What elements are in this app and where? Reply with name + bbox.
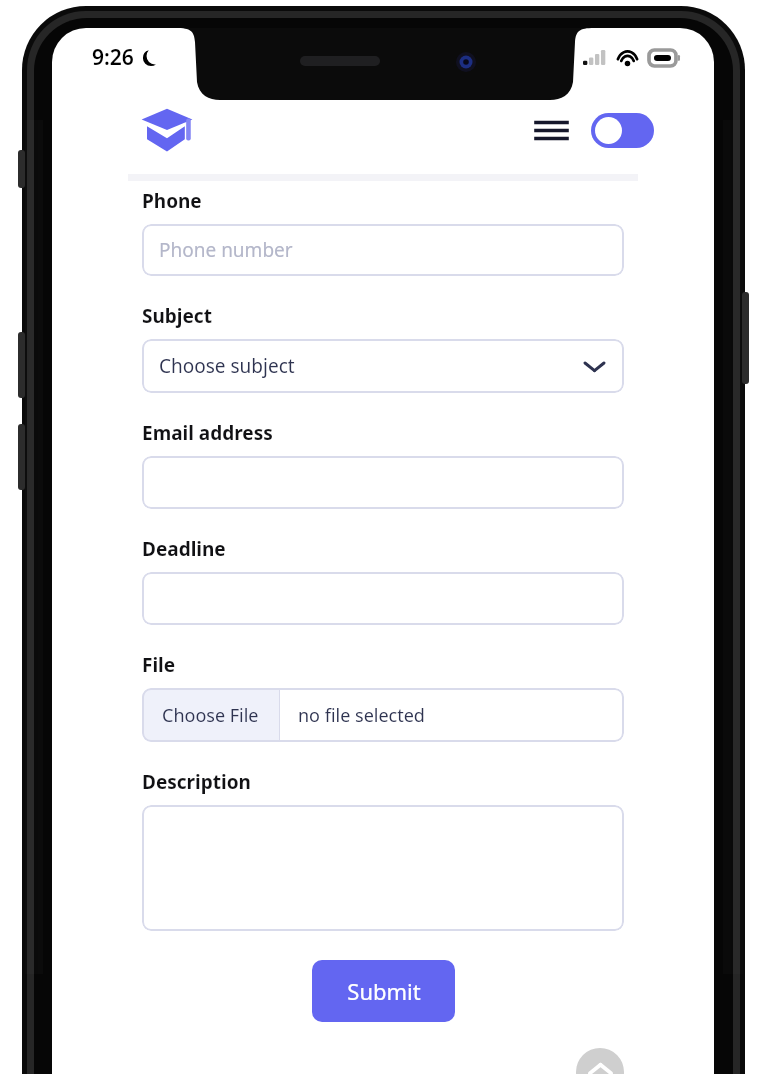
- staticText: Deadline: [142, 536, 226, 562]
- staticText: File: [142, 652, 176, 678]
- staticText: no file selected: [298, 703, 425, 728]
- staticText: Phone: [142, 188, 202, 214]
- staticText: Description: [142, 769, 251, 795]
- button[interactable]: Dark mode toggle: [591, 113, 654, 148]
- button[interactable]: Menu: [531, 110, 571, 150]
- button[interactable]: Submit: [312, 960, 455, 1022]
- button[interactable]: Home logo: [140, 107, 194, 153]
- staticText: Subject: [142, 303, 212, 329]
- staticText: Submit: [347, 976, 421, 1006]
- button[interactable]: Scroll to top: [576, 1048, 624, 1074]
- button[interactable]: Choose subject: [142, 339, 624, 393]
- staticText: Choose subject: [159, 353, 295, 379]
- button[interactable]: [142, 572, 624, 625]
- staticText: Phone number: [159, 237, 293, 263]
- button[interactable]: [142, 805, 624, 931]
- button[interactable]: Choose File: [142, 688, 279, 742]
- staticText: Choose File: [162, 703, 259, 728]
- button[interactable]: [142, 456, 624, 509]
- button[interactable]: no file selected: [280, 688, 624, 742]
- staticText: Email address: [142, 420, 273, 446]
- button[interactable]: Phone number: [142, 224, 624, 276]
- staticText: 9:26: [92, 43, 134, 72]
